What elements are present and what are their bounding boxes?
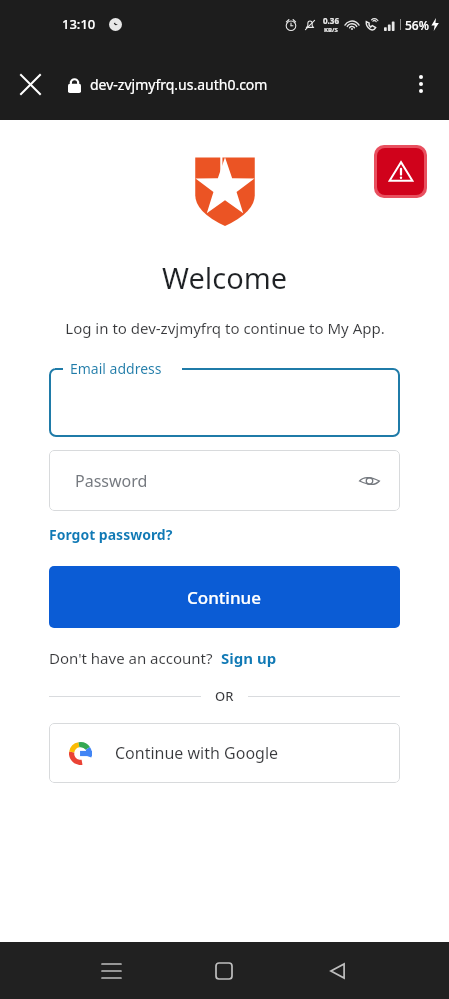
staticText: 13:10 [62,15,96,33]
button[interactable]: Continue with Google [49,723,400,783]
button[interactable]: Forgot password? [49,525,173,544]
staticText: Welcome [162,258,288,297]
staticText: Sign up [221,648,277,668]
button[interactable]: Home [200,947,248,995]
staticText: Password [75,470,148,492]
button[interactable]: Email address [49,359,400,437]
button[interactable]: Recent apps [87,947,135,995]
button[interactable]: Password [49,450,400,511]
staticText: 56% [405,17,429,33]
staticText: Don't have an account? [49,648,213,668]
button[interactable]: Back [313,947,361,995]
button[interactable]: Continue [49,566,400,628]
staticText: Continue with Google [115,742,279,764]
staticText: Forgot password? [49,525,173,544]
button[interactable]: Sign up [221,648,277,668]
button[interactable]: Show password [351,463,387,499]
staticText: Continue [187,586,262,609]
staticText: 0.36 [323,15,339,26]
staticText: Email address [70,359,162,378]
staticText: KB/S [324,26,338,34]
button[interactable]: Close [10,64,50,104]
button[interactable]: More options [401,64,441,104]
button[interactable]: Error [377,148,424,195]
staticText: OR [215,687,234,705]
staticText: Log in to dev-zvjmyfrq to continue to My… [65,318,385,338]
staticText: dev-zvjmyfrq.us.auth0.com [90,75,268,94]
